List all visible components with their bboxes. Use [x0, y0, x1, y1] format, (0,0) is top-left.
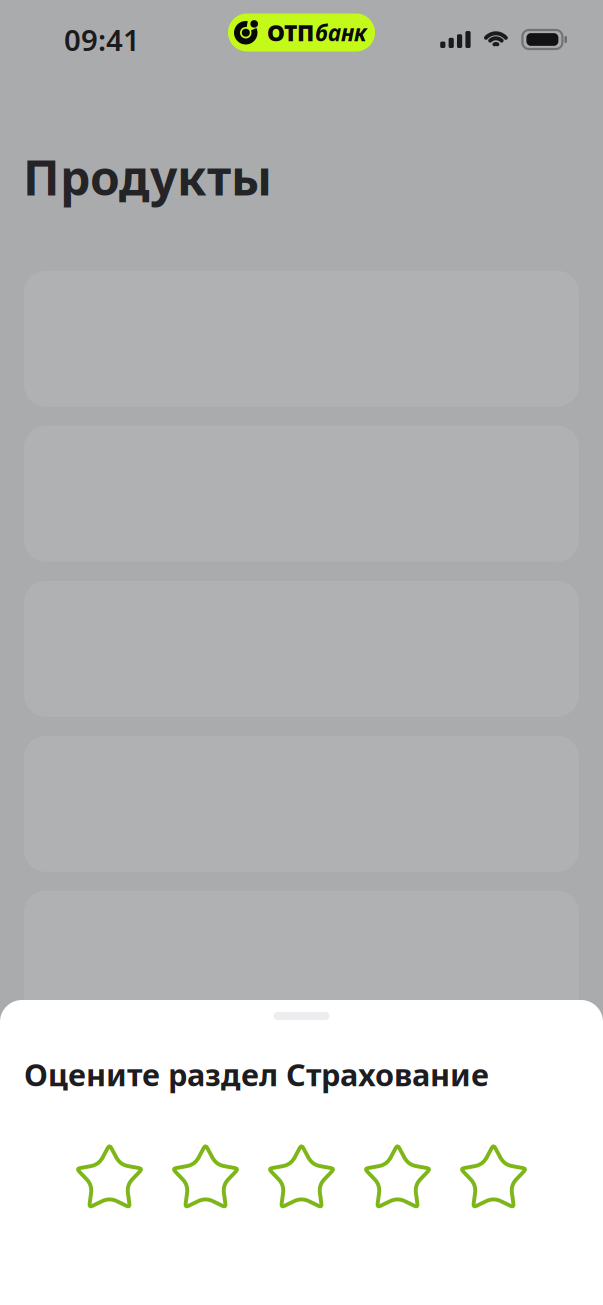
staticText: Продукты: [23, 145, 272, 209]
button[interactable]: Оценка 5: [460, 1145, 526, 1207]
button[interactable]: Оценка 2: [172, 1145, 238, 1207]
staticText: ОТП: [267, 17, 314, 47]
button[interactable]: Оценка 1: [76, 1145, 142, 1207]
button[interactable]: Оценка 4: [364, 1145, 430, 1207]
button[interactable]: Оценка 3: [268, 1145, 334, 1207]
staticText: банк: [315, 17, 367, 47]
staticText: 09:41: [64, 20, 140, 59]
staticText: Оцените раздел Страхование: [24, 1054, 489, 1095]
